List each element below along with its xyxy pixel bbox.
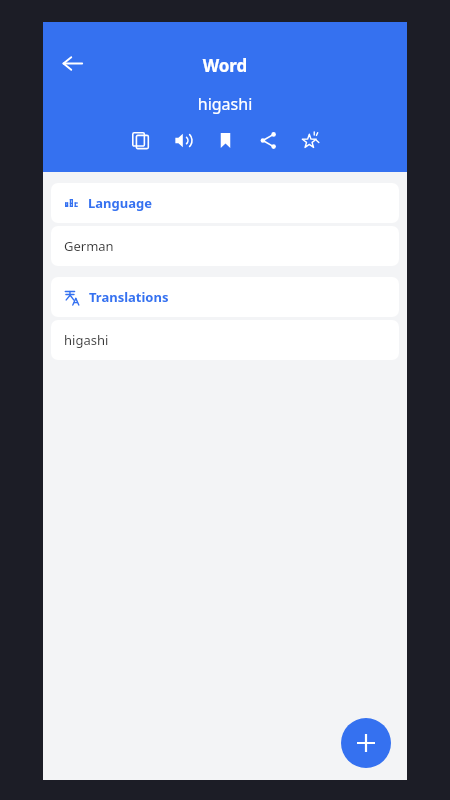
button[interactable]: Favorite	[295, 125, 325, 155]
staticText: Word	[43, 54, 407, 77]
staticText: Translations	[89, 288, 169, 306]
button[interactable]: Share	[253, 125, 283, 155]
button[interactable]: German	[51, 226, 399, 266]
staticText: higashi	[64, 331, 109, 349]
button[interactable]: Bookmark	[210, 125, 240, 155]
button[interactable]: Pronounce	[168, 125, 198, 155]
button[interactable]: Translations	[51, 277, 399, 317]
button[interactable]: Copy	[125, 125, 155, 155]
button[interactable]: Back	[53, 44, 91, 82]
button[interactable]: higashi	[51, 320, 399, 360]
button[interactable]: Language	[51, 183, 399, 223]
staticText: Language	[88, 194, 152, 212]
button[interactable]: Add	[341, 718, 391, 768]
staticText: higashi	[43, 93, 407, 115]
staticText: German	[64, 237, 114, 255]
